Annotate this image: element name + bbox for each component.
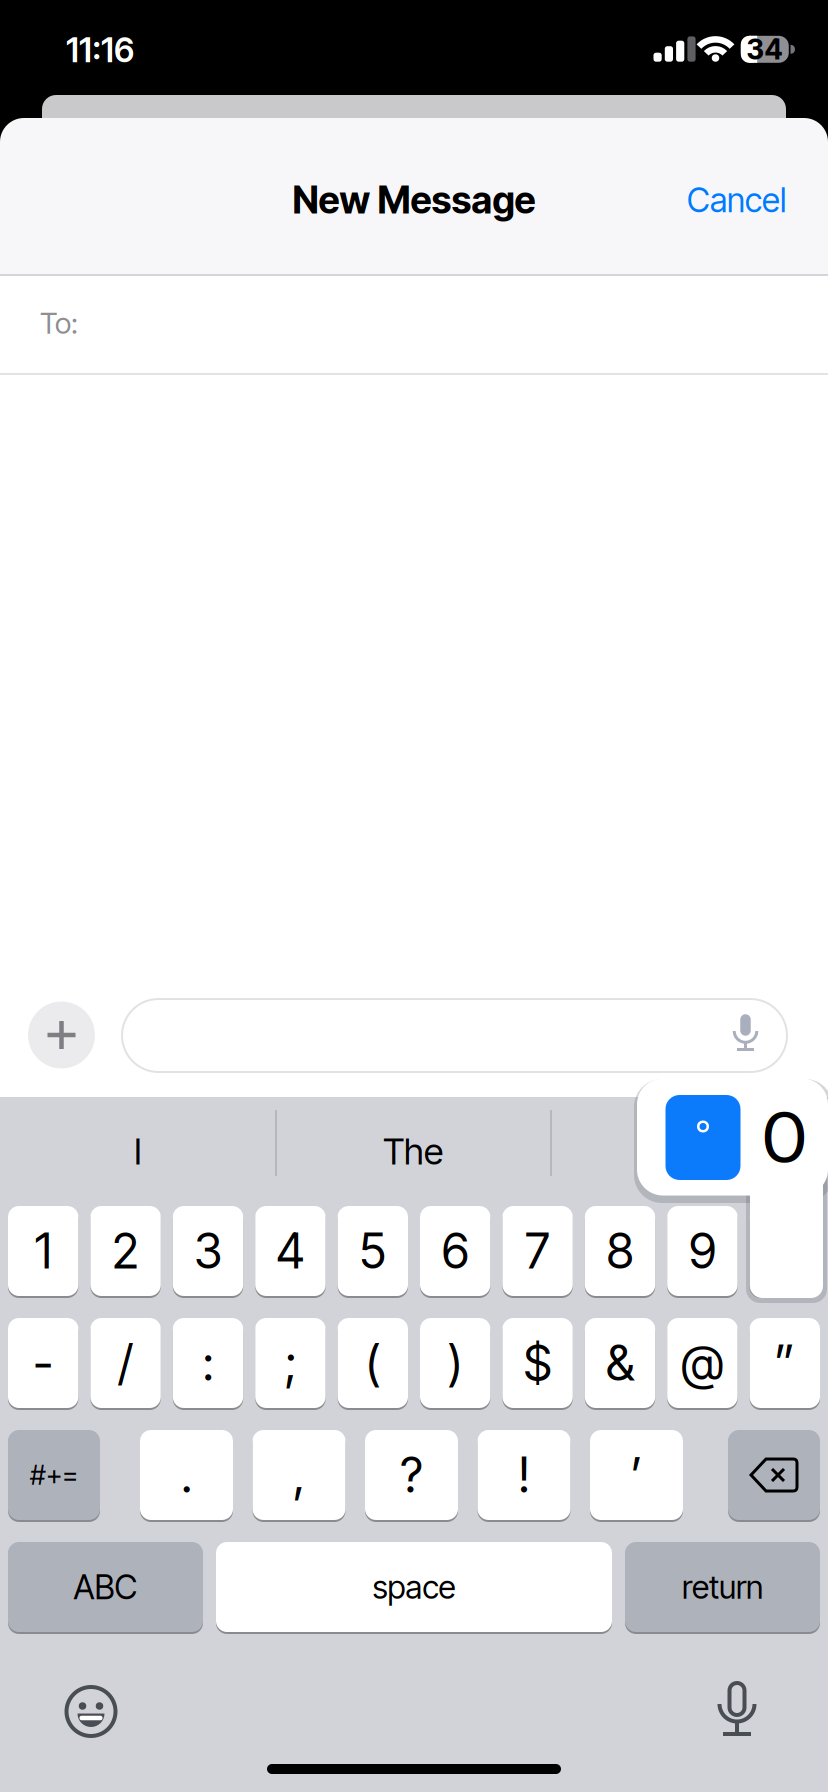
staticText: 0 [764, 1096, 804, 1178]
staticText: 11:16 [66, 30, 134, 70]
staticText: ; [284, 1335, 296, 1391]
button[interactable]: , [252, 1430, 345, 1520]
button[interactable]: ? [365, 1430, 458, 1520]
button[interactable]: 5 [338, 1206, 408, 1296]
button[interactable]: ! [477, 1430, 570, 1520]
staticText: ! [518, 1447, 530, 1503]
staticText: ’ [630, 1447, 642, 1503]
button[interactable]: space [216, 1542, 612, 1632]
staticText: 1 [35, 1223, 52, 1279]
button[interactable]: ( [338, 1318, 408, 1408]
staticText: 8 [606, 1223, 633, 1279]
staticText: 2 [112, 1223, 139, 1279]
button[interactable]: 6 [420, 1206, 490, 1296]
button[interactable]: 0 [750, 1206, 820, 1296]
staticText: 4 [276, 1223, 305, 1279]
staticText: The [383, 1130, 443, 1173]
button[interactable] [28, 1001, 95, 1068]
button[interactable]: 3 [173, 1206, 243, 1296]
button[interactable]: 1 [8, 1206, 78, 1296]
staticText: 6 [442, 1223, 469, 1279]
button[interactable] [707, 1681, 767, 1753]
button[interactable]: 2 [90, 1206, 161, 1296]
button[interactable]: ” [750, 1318, 820, 1408]
staticText: ” [774, 1335, 795, 1391]
staticText: $ [524, 1335, 552, 1391]
staticText: Cancel [687, 180, 786, 220]
staticText: - [33, 1335, 53, 1391]
staticText: ( [365, 1335, 380, 1391]
staticText: #+= [30, 1459, 78, 1491]
button[interactable]: & [585, 1318, 655, 1408]
staticText: return [682, 1568, 763, 1606]
button[interactable]: ; [255, 1318, 326, 1408]
button[interactable]: ’ [590, 1430, 683, 1520]
staticText: . [181, 1447, 192, 1503]
staticText: & [606, 1335, 634, 1391]
button[interactable]: ABC [8, 1542, 203, 1632]
staticText: : [202, 1335, 213, 1391]
button[interactable]: - [8, 1318, 78, 1408]
staticText: New Message [292, 178, 535, 222]
button[interactable] [121, 998, 788, 1073]
button[interactable]: / [90, 1318, 161, 1408]
staticText: To: [40, 306, 78, 340]
button[interactable]: 8 [585, 1206, 655, 1296]
staticText: ) [448, 1335, 463, 1391]
staticText: 34 [746, 33, 782, 66]
button[interactable]: @ [667, 1318, 738, 1408]
staticText: 7 [525, 1223, 550, 1279]
staticText: ? [400, 1447, 422, 1503]
button[interactable]: I [3, 1106, 273, 1196]
staticText: ABC [73, 1567, 137, 1607]
button[interactable]: return [625, 1542, 820, 1632]
button[interactable]: Cancel [687, 180, 786, 220]
button[interactable]: 4 [255, 1206, 326, 1296]
button[interactable]: . [140, 1430, 233, 1520]
button[interactable]: $ [502, 1318, 573, 1408]
staticText: 5 [359, 1223, 386, 1279]
button[interactable]: : [173, 1318, 243, 1408]
staticText: space [372, 1568, 455, 1606]
staticText: @ [681, 1335, 724, 1391]
button[interactable]: ) [420, 1318, 490, 1408]
button[interactable]: 9 [667, 1206, 738, 1296]
staticText: 9 [689, 1223, 716, 1279]
staticText: , [293, 1447, 305, 1503]
staticText: / [118, 1335, 133, 1391]
button[interactable]: To: [0, 274, 828, 371]
button[interactable]: 7 [502, 1206, 573, 1296]
button[interactable]: The [278, 1106, 548, 1196]
staticText: 3 [194, 1223, 222, 1279]
button[interactable] [728, 1430, 820, 1520]
button[interactable]: #+= [8, 1430, 100, 1520]
button[interactable] [59, 1679, 123, 1743]
staticText: I [134, 1130, 142, 1173]
